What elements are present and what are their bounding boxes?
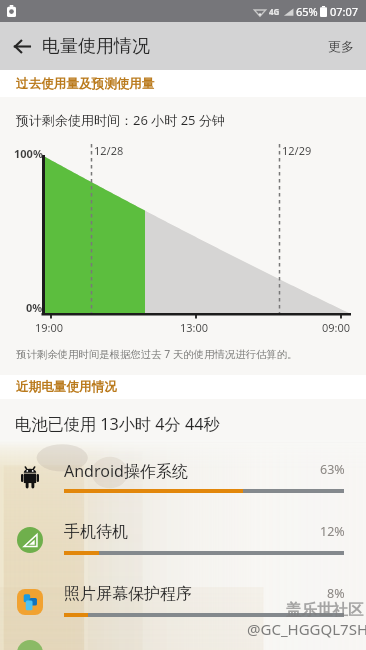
staticText: 100% bbox=[14, 146, 43, 161]
staticText: 07:07 bbox=[330, 4, 359, 19]
staticText: 13:00 bbox=[180, 320, 209, 335]
staticText: Android操作系统 bbox=[64, 460, 188, 482]
staticText: 电池已使用 13小时 4分 44秒 bbox=[15, 413, 220, 435]
staticText: 照片屏幕保护程序 bbox=[64, 584, 192, 604]
button[interactable]: 返回 bbox=[0, 24, 44, 68]
staticText: 63% bbox=[320, 461, 345, 478]
staticText: 09:00 bbox=[322, 320, 351, 335]
staticText: 65% bbox=[296, 4, 318, 19]
staticText: 电量使用情况 bbox=[42, 35, 150, 58]
staticText: 19:00 bbox=[35, 320, 64, 335]
staticText: 预计剩余使用时间：26 小时 25 分钟 bbox=[16, 111, 225, 129]
staticText: 12% bbox=[320, 523, 345, 540]
button[interactable]: Android操作系统 bbox=[0, 452, 366, 514]
staticText: 手机待机 bbox=[64, 522, 128, 542]
staticText: 过去使用量及预测使用量 bbox=[16, 76, 155, 92]
staticText: 0% bbox=[26, 300, 43, 315]
staticText: 近期电量使用情况 bbox=[16, 379, 117, 395]
staticText: 4G bbox=[269, 6, 280, 17]
button[interactable]: 更多 bbox=[316, 26, 366, 66]
button[interactable]: 照片屏幕保护程序 bbox=[0, 576, 366, 638]
staticText: 8% bbox=[327, 585, 345, 602]
staticText: 12/29 bbox=[282, 143, 312, 158]
button[interactable]: 手机待机 bbox=[0, 514, 366, 576]
staticText: 预计剩余使用时间是根据您过去 7 天的使用情况进行估算的。 bbox=[16, 347, 298, 361]
staticText: @GC_HGGQL7SH bbox=[247, 619, 366, 639]
staticText: 更多 bbox=[328, 38, 354, 54]
staticText: 12/28 bbox=[94, 143, 124, 158]
staticText: 盖乐世社区 bbox=[286, 600, 364, 620]
